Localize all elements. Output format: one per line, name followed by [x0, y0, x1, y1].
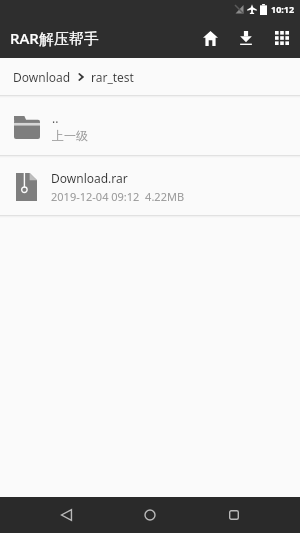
- button[interactable]: Download: [13, 69, 71, 85]
- button[interactable]: [31, 497, 101, 533]
- staticText: 10:12: [271, 3, 295, 15]
- button[interactable]: [192, 20, 228, 56]
- staticText: Download.rar: [51, 170, 128, 186]
- staticText: ..: [52, 110, 59, 126]
- button[interactable]: [115, 497, 185, 533]
- button[interactable]: ..: [0, 98, 300, 155]
- staticText: 上一级: [52, 128, 88, 143]
- staticText: 2019-12-04 09:12 4.22MB: [51, 189, 185, 204]
- button[interactable]: [264, 20, 300, 56]
- button[interactable]: [228, 20, 264, 56]
- button[interactable]: rar_test: [91, 69, 134, 85]
- staticText: RAR解压帮手: [10, 28, 99, 48]
- button[interactable]: Download.rar: [0, 158, 300, 215]
- button[interactable]: [199, 497, 269, 533]
